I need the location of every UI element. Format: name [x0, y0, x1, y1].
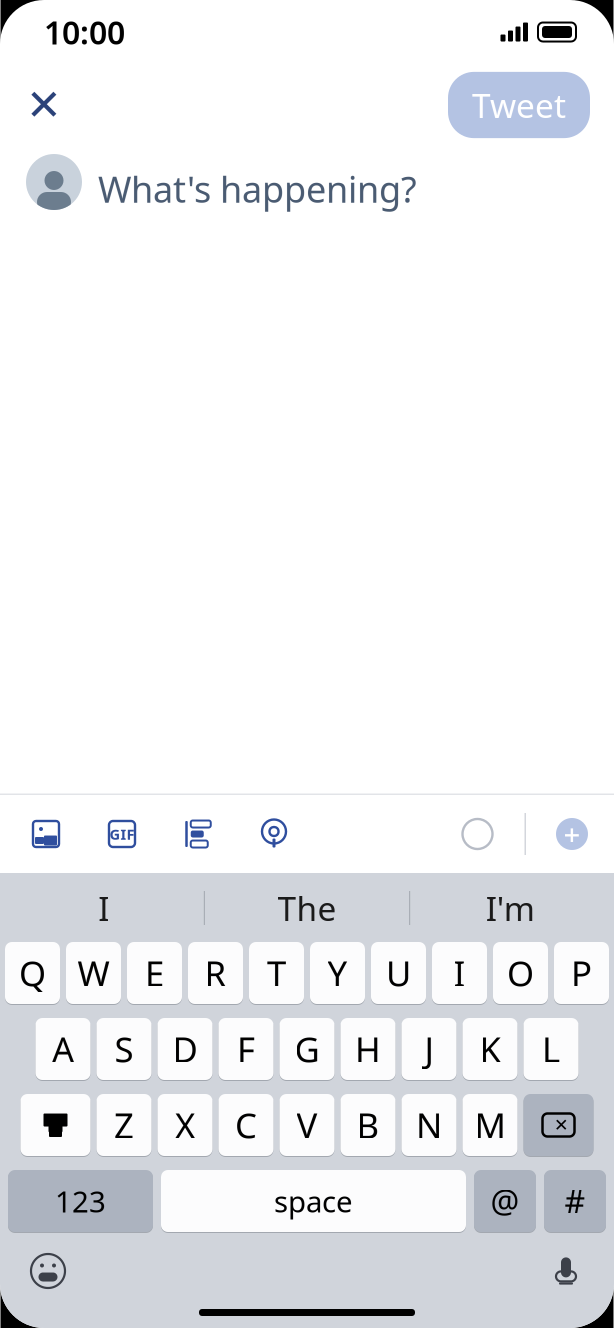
- button[interactable]: Delete: [523, 1093, 593, 1157]
- staticText: M: [474, 1102, 505, 1148]
- button[interactable]: Add poll: [170, 806, 226, 862]
- staticText: S: [114, 1026, 133, 1072]
- button[interactable]: F: [218, 1017, 273, 1081]
- staticText: A: [52, 1026, 74, 1072]
- button[interactable]: K: [462, 1017, 517, 1081]
- button[interactable]: U: [371, 941, 426, 1005]
- button[interactable]: E: [127, 941, 182, 1005]
- button[interactable]: Emoji: [22, 1245, 74, 1297]
- button[interactable]: A: [35, 1017, 90, 1081]
- staticText: L: [542, 1026, 560, 1072]
- staticText: F: [237, 1026, 255, 1072]
- button[interactable]: Z: [96, 1093, 151, 1157]
- button[interactable]: I'm: [410, 880, 610, 936]
- staticText: GIF: [109, 824, 134, 844]
- staticText: V: [296, 1102, 317, 1148]
- button[interactable]: C: [218, 1093, 273, 1157]
- button[interactable]: S: [96, 1017, 151, 1081]
- button[interactable]: P: [554, 941, 609, 1005]
- button[interactable]: J: [401, 1017, 456, 1081]
- button[interactable]: D: [157, 1017, 212, 1081]
- button[interactable]: Close: [16, 77, 72, 133]
- button[interactable]: 123: [8, 1169, 153, 1233]
- staticText: 123: [55, 1181, 106, 1220]
- button[interactable]: B: [340, 1093, 395, 1157]
- button[interactable]: space: [161, 1169, 466, 1233]
- button[interactable]: Add location: [246, 806, 302, 862]
- button[interactable]: G: [279, 1017, 334, 1081]
- staticText: J: [424, 1026, 433, 1072]
- staticText: ✕: [554, 1115, 569, 1135]
- staticText: R: [204, 950, 226, 996]
- staticText: Z: [114, 1102, 134, 1148]
- staticText: The: [277, 886, 336, 930]
- staticText: @: [490, 1180, 519, 1222]
- button[interactable]: #: [544, 1169, 606, 1233]
- staticText: I: [98, 886, 109, 930]
- button[interactable]: L: [523, 1017, 578, 1081]
- button[interactable]: T: [249, 941, 304, 1005]
- button[interactable]: Q: [5, 941, 60, 1005]
- button[interactable]: Y: [310, 941, 365, 1005]
- staticText: C: [235, 1102, 257, 1148]
- staticText: Tweet: [472, 83, 566, 127]
- button[interactable]: Dictate: [540, 1245, 592, 1297]
- staticText: N: [416, 1102, 442, 1148]
- button[interactable]: I: [4, 880, 204, 936]
- staticText: W: [77, 950, 109, 996]
- button[interactable]: X: [157, 1093, 212, 1157]
- button[interactable]: W: [66, 941, 121, 1005]
- staticText: #: [564, 1180, 585, 1222]
- staticText: I: [453, 950, 465, 996]
- staticText: U: [386, 950, 411, 996]
- button[interactable]: Add tweet: [548, 810, 596, 858]
- staticText: space: [274, 1181, 353, 1220]
- button[interactable]: Add photo: [18, 806, 74, 862]
- staticText: P: [571, 950, 592, 996]
- button[interactable]: R: [188, 941, 243, 1005]
- button[interactable]: Shift: [20, 1093, 90, 1157]
- staticText: 10:00: [44, 11, 125, 53]
- button[interactable]: Character count: [452, 809, 502, 859]
- button[interactable]: The: [205, 880, 409, 936]
- button[interactable]: O: [493, 941, 548, 1005]
- staticText: T: [267, 950, 286, 996]
- staticText: What's happening?: [98, 165, 417, 213]
- button[interactable]: N: [401, 1093, 456, 1157]
- staticText: X: [175, 1102, 195, 1148]
- staticText: D: [172, 1026, 197, 1072]
- staticText: H: [355, 1026, 381, 1072]
- button[interactable]: Add GIF: [94, 806, 150, 862]
- staticText: G: [294, 1026, 319, 1072]
- button[interactable]: M: [462, 1093, 517, 1157]
- staticText: +: [563, 814, 580, 853]
- staticText: O: [507, 950, 534, 996]
- button[interactable]: I: [432, 941, 487, 1005]
- staticText: I'm: [486, 886, 535, 930]
- button[interactable]: Tweet: [448, 72, 590, 138]
- staticText: K: [479, 1026, 500, 1072]
- staticText: ✕: [26, 81, 62, 129]
- button[interactable]: H: [340, 1017, 395, 1081]
- button[interactable]: @: [474, 1169, 536, 1233]
- staticText: Y: [327, 950, 347, 996]
- staticText: B: [356, 1102, 379, 1148]
- button[interactable]: V: [279, 1093, 334, 1157]
- staticText: Q: [19, 950, 46, 996]
- staticText: E: [145, 950, 164, 996]
